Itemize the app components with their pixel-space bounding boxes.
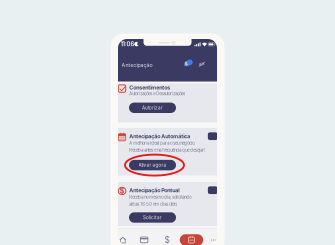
staticText: A melhoria ideal para o seu negócio. xyxy=(129,141,195,146)
staticText: $ xyxy=(164,235,169,245)
button[interactable]: Mais xyxy=(206,232,222,245)
button[interactable]: Pagamentos xyxy=(159,232,175,245)
button[interactable]: Ativar agora xyxy=(129,160,176,170)
button[interactable]: Início xyxy=(115,232,131,245)
staticText: 11:06 xyxy=(121,41,135,48)
staticText: Ativar agora xyxy=(138,162,166,168)
staticText: S xyxy=(120,187,125,195)
staticText: Autorizações e Desautorizações xyxy=(129,91,185,96)
staticText: Antecipação Automática xyxy=(129,133,190,139)
button[interactable]: Notificações xyxy=(181,57,193,69)
button[interactable]: Solicitar xyxy=(129,212,176,223)
button[interactable]: Cartões xyxy=(136,232,152,245)
staticText: Receba no mesmo dia, solicitando xyxy=(129,195,191,200)
button[interactable]: Autorizar xyxy=(129,103,176,113)
staticText: Antecipação xyxy=(122,62,153,68)
staticText: Consentimentos xyxy=(129,84,170,91)
button[interactable]: Ocultar valores xyxy=(196,58,208,70)
staticText: Autorizar xyxy=(142,105,163,111)
staticText: Receba antes e na frequência que desejar… xyxy=(129,148,205,153)
staticText: Antecipação Pontual xyxy=(129,187,179,193)
staticText: Solicitar xyxy=(143,215,162,220)
staticText: até as 16:50 em dias úteis xyxy=(129,202,177,207)
button[interactable]: Antecipação xyxy=(180,234,203,245)
